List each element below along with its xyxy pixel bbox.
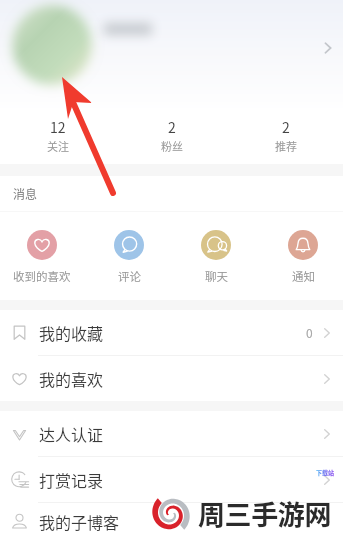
button[interactable]: 2 — [229, 0, 343, 154]
staticText: 2 — [168, 117, 176, 137]
staticText: 粉丝 — [161, 138, 183, 154]
staticText: 我的子博客 — [39, 510, 120, 533]
staticText: 周三手游网 — [198, 494, 331, 533]
staticText: 通知 — [292, 268, 315, 285]
staticText: 收到的喜欢 — [13, 268, 71, 285]
button[interactable]: 12 — [0, 0, 115, 154]
staticText: 评论 — [118, 268, 141, 285]
staticText: 消息 — [13, 185, 38, 202]
staticText: 0 — [306, 324, 313, 341]
button[interactable]: 收到的喜欢 — [10, 212, 74, 285]
button[interactable]: 评论 — [97, 212, 161, 285]
button[interactable]: 达人认证 — [0, 411, 343, 456]
staticText: 我的喜欢 — [39, 367, 104, 390]
button[interactable]: 我的子博客 — [0, 503, 343, 540]
staticText: 2 — [282, 117, 290, 137]
staticText: 关注 — [47, 138, 69, 154]
staticText: 下载站 — [316, 468, 335, 477]
other: Open profile — [320, 40, 336, 56]
staticText: 我的收藏 — [39, 321, 104, 344]
button[interactable]: 我的喜欢 — [0, 356, 343, 401]
staticText: 12 — [50, 117, 66, 137]
button[interactable]: 通知 — [271, 212, 335, 285]
button[interactable]: 打赏记录 — [0, 457, 343, 502]
button[interactable]: 2 — [115, 0, 229, 154]
staticText: 达人认证 — [39, 422, 104, 445]
staticText: 聊天 — [205, 268, 228, 285]
button[interactable]: Open profile — [0, 0, 343, 88]
staticText: 打赏记录 — [39, 468, 104, 491]
button[interactable]: 我的收藏 — [0, 310, 343, 355]
button[interactable]: 聊天 — [184, 212, 248, 285]
staticText: 推荐 — [275, 138, 297, 154]
